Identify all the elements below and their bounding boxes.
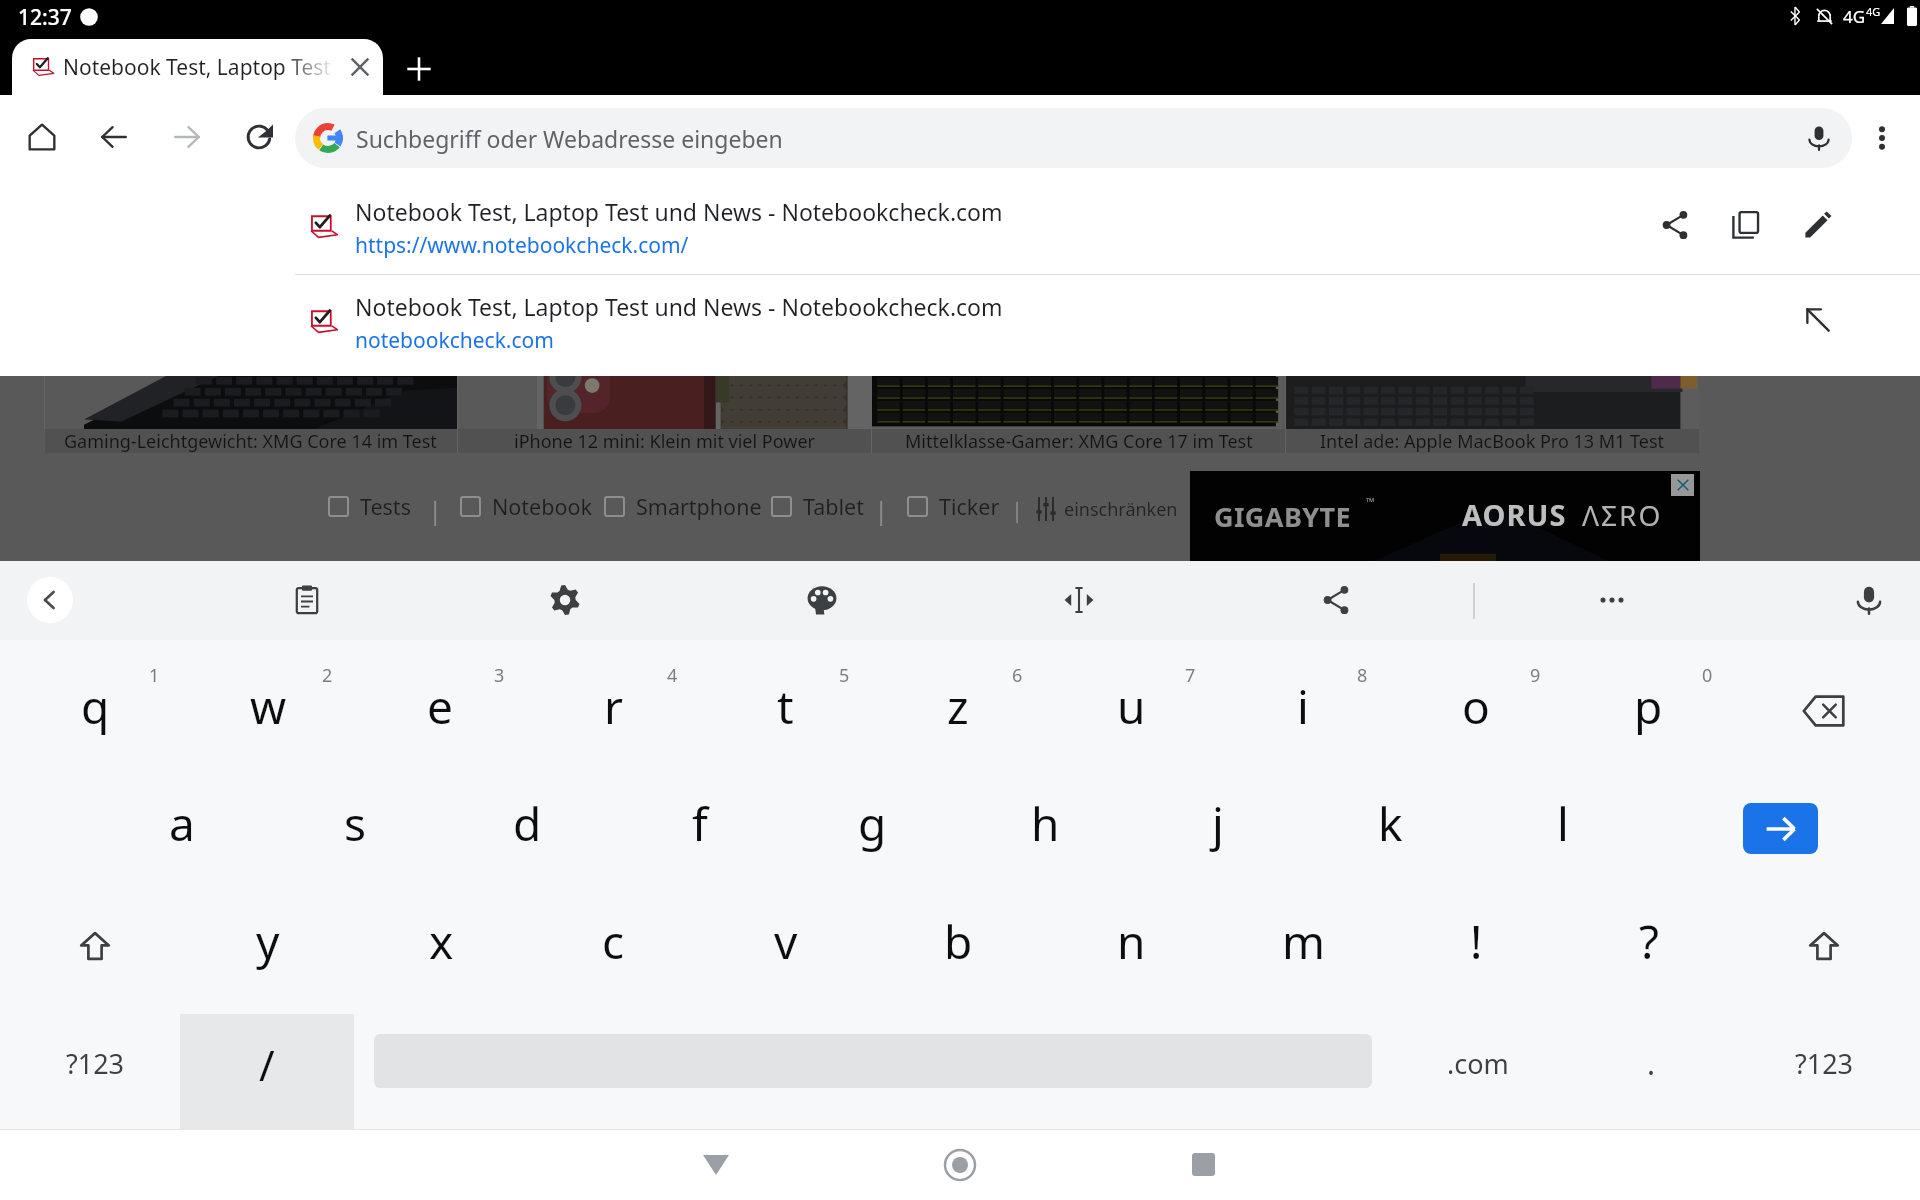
button[interactable]: Keyboard tool	[281, 574, 333, 626]
staticText: /	[259, 1036, 275, 1093]
staticText: |	[874, 492, 889, 527]
button[interactable]: m	[1218, 882, 1390, 1000]
button[interactable]: w	[182, 647, 354, 765]
staticText: Smartphone	[636, 492, 762, 521]
button[interactable]: b	[872, 882, 1044, 1000]
button[interactable]: /	[180, 1014, 354, 1130]
button[interactable]: Shift	[35, 887, 155, 1005]
button[interactable]: Keyboard tool	[1843, 574, 1895, 626]
button[interactable]: Tests	[328, 489, 411, 523]
staticText: Gaming-Leichtgewicht: XMG Core 14 im Tes…	[64, 429, 437, 453]
staticText: g	[858, 792, 887, 855]
button[interactable]: Backspace	[1764, 652, 1884, 770]
staticText: k	[1378, 792, 1403, 855]
staticText: t	[777, 675, 794, 738]
button[interactable]: !	[1390, 882, 1562, 1000]
button[interactable]: p	[1562, 647, 1734, 765]
staticText: 3	[494, 663, 505, 688]
button[interactable]: Share	[1648, 198, 1702, 252]
button[interactable]: x	[355, 882, 527, 1000]
staticText: j	[1212, 792, 1224, 855]
button[interactable]: Smartphone	[604, 489, 762, 523]
button[interactable]: Notebook Test, Laptop Test und News - No…	[0, 275, 1920, 369]
button[interactable]: u	[1045, 647, 1217, 765]
staticText: .com	[1447, 1045, 1509, 1082]
button[interactable]: GIGABYTE	[1190, 471, 1700, 561]
button[interactable]: Notebook Test, Laptop Test und N	[12, 39, 383, 95]
button[interactable]: Expand toolbar	[27, 577, 73, 623]
button[interactable]: .com	[1392, 1005, 1564, 1121]
button[interactable]: Back	[90, 113, 138, 161]
staticText: !	[1470, 910, 1483, 973]
button[interactable]: Keyboard tool	[1310, 574, 1362, 626]
button[interactable]: h	[959, 764, 1131, 882]
button[interactable]: ?	[1563, 882, 1735, 1000]
staticText: AORUS	[1462, 495, 1567, 534]
button[interactable]: n	[1045, 882, 1217, 1000]
button[interactable]: ?123	[1738, 1005, 1910, 1121]
button[interactable]: Close tab	[337, 44, 383, 90]
button[interactable]: Keyboard tool	[796, 574, 848, 626]
button[interactable]: Copy	[1719, 198, 1773, 252]
button[interactable]: e	[354, 647, 526, 765]
button[interactable]: v	[700, 882, 872, 1000]
button[interactable]: c	[527, 882, 699, 1000]
button[interactable]: Tablet	[771, 489, 864, 523]
staticText: d	[513, 792, 542, 855]
staticText: Notebook	[492, 492, 592, 521]
button[interactable]: Home	[920, 1129, 1000, 1200]
button[interactable]: Notebook Test, Laptop Test und News - No…	[0, 180, 1920, 274]
button[interactable]: l	[1477, 764, 1649, 882]
button[interactable]: Fill query	[1791, 293, 1845, 347]
button[interactable]: f	[614, 764, 786, 882]
staticText: 4	[667, 663, 678, 688]
button[interactable]: g	[786, 764, 958, 882]
button[interactable]: i	[1217, 647, 1389, 765]
button[interactable]: Recent apps	[1163, 1129, 1243, 1200]
staticText: i	[1297, 675, 1309, 738]
button[interactable]: o	[1390, 647, 1562, 765]
button[interactable]: y	[182, 882, 354, 1000]
staticText: 2	[322, 663, 333, 688]
button[interactable]: New tab	[395, 45, 443, 93]
button[interactable]: Keyboard tool	[539, 574, 591, 626]
button[interactable]: t	[699, 647, 871, 765]
button[interactable]: ?123	[9, 1005, 181, 1121]
button[interactable]: Close ad	[1671, 474, 1694, 496]
button[interactable]: einschränken	[1033, 492, 1177, 526]
button[interactable]: Edit	[1791, 198, 1845, 252]
staticText: Tests	[360, 492, 411, 521]
button[interactable]: Shift	[1764, 887, 1884, 1005]
staticText: x	[429, 910, 454, 973]
button[interactable]: d	[441, 764, 613, 882]
button[interactable]: Notebook	[460, 489, 592, 523]
staticText: s	[344, 792, 367, 855]
staticText: c	[602, 910, 625, 973]
button[interactable]: Keyboard tool	[1586, 574, 1638, 626]
staticText: Ticker	[939, 492, 1000, 521]
staticText: f	[692, 792, 708, 855]
button[interactable]: Keyboard tool	[1053, 574, 1105, 626]
staticText: notebookcheck.com	[355, 326, 554, 355]
button[interactable]: Voice search	[1796, 115, 1842, 161]
button[interactable]: Hide keyboard	[676, 1129, 756, 1200]
button[interactable]: .	[1565, 1005, 1737, 1121]
button[interactable]: Ticker	[907, 489, 1000, 523]
button[interactable]: Reload	[235, 113, 283, 161]
staticText: l	[1557, 792, 1569, 855]
button[interactable]: k	[1304, 764, 1476, 882]
button[interactable]: Suchbegriff oder Webadresse eingeben	[295, 108, 1852, 168]
button[interactable]: j	[1132, 764, 1304, 882]
button[interactable]: r	[527, 647, 699, 765]
button[interactable]: Enter	[1743, 803, 1818, 854]
button[interactable]: s	[269, 764, 441, 882]
button[interactable]: a	[96, 764, 268, 882]
staticText: iPhone 12 mini: Klein mit viel Power	[514, 429, 815, 453]
button[interactable]: z	[872, 647, 1044, 765]
button[interactable]: Home	[18, 113, 66, 161]
button[interactable]: More options	[1858, 114, 1906, 162]
button[interactable]: Forward	[163, 113, 211, 161]
button[interactable]: q	[9, 647, 181, 765]
staticText: b	[944, 910, 973, 973]
